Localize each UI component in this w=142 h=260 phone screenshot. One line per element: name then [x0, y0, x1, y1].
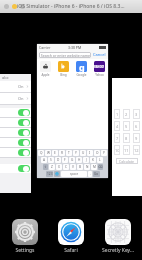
button[interactable]: Key T: [66, 150, 72, 156]
button[interactable]: Carrier: [36, 43, 109, 179]
staticText: C: [65, 165, 68, 169]
button[interactable]: Key O: [94, 150, 100, 156]
staticText: T: [68, 151, 70, 155]
button[interactable]: Toggle on: [0, 118, 31, 127]
button[interactable]: Key Go: [93, 171, 100, 177]
button[interactable]: Window control: [12, 4, 17, 9]
button[interactable]: Key .: [88, 171, 92, 177]
staticText: Safari: [64, 247, 78, 254]
button[interactable]: Toggle on: [18, 165, 30, 172]
staticText: Search or enter website name: [39, 53, 90, 58]
button[interactable]: 10: [114, 145, 120, 155]
staticText: 3:30 PM: [68, 45, 82, 50]
button[interactable]: 8: [123, 133, 130, 143]
button[interactable]: Key V: [70, 164, 76, 170]
button[interactable]: abc: [0, 74, 31, 193]
button[interactable]: Key R: [59, 150, 65, 156]
button[interactable]: Key K: [90, 157, 96, 163]
button[interactable]: Search or enter website name: [39, 52, 91, 58]
button[interactable]: On: [0, 81, 31, 92]
staticText: 9: [135, 136, 138, 141]
staticText: 123: [47, 172, 53, 176]
button[interactable]: Key H: [76, 157, 82, 163]
staticText: F: [64, 158, 66, 162]
button[interactable]: 9: [133, 133, 140, 143]
button[interactable]: Settings: [3, 219, 47, 254]
button[interactable]: Key ⇧: [43, 164, 48, 170]
button[interactable]: Key B: [77, 164, 83, 170]
other: Settings: [12, 219, 38, 245]
button[interactable]: Toggle on: [18, 109, 30, 116]
button[interactable]: Calculate: [116, 158, 138, 164]
button[interactable]: Cancel: [93, 52, 106, 57]
button[interactable]: 6: [133, 121, 140, 131]
staticText: 2: [125, 112, 128, 117]
button[interactable]: YAHOO!: [94, 61, 105, 77]
staticText: 10: [115, 148, 120, 153]
button[interactable]: Key P: [101, 150, 107, 156]
button[interactable]: Key W: [45, 150, 51, 156]
button[interactable]: 4: [114, 121, 120, 131]
button[interactable]: Key L: [97, 157, 103, 163]
button[interactable]: 12: [133, 145, 140, 155]
staticText: Settings: [15, 247, 35, 254]
button[interactable]: Toggle on: [0, 164, 31, 173]
button[interactable]: Key N: [84, 164, 90, 170]
button[interactable]: Toggle on: [0, 138, 31, 147]
button[interactable]: Key J: [83, 157, 89, 163]
button[interactable]: Key Y: [73, 150, 79, 156]
button[interactable]: Toggle on: [0, 108, 31, 117]
button[interactable]: Toggle on: [18, 149, 30, 156]
button[interactable]: 2: [123, 109, 130, 119]
staticText: U: [82, 151, 85, 155]
button[interactable]: Bing: [58, 61, 69, 77]
staticText: B: [79, 165, 82, 169]
button[interactable]: Key F: [62, 157, 68, 163]
button[interactable]: Key D: [55, 157, 61, 163]
button[interactable]: Toggle on: [0, 148, 31, 157]
button[interactable]: Key E: [52, 150, 58, 156]
button[interactable]: Key G: [69, 157, 75, 163]
button[interactable]: 5: [123, 121, 130, 131]
button[interactable]: 1: [114, 109, 120, 119]
button[interactable]: Key ⌫: [98, 164, 103, 170]
button[interactable]: Key A: [41, 157, 47, 163]
button[interactable]: 11: [123, 145, 130, 155]
button[interactable]: Toggle on: [18, 139, 30, 146]
button[interactable]: Key C: [63, 164, 69, 170]
staticText: On: [18, 96, 24, 101]
button[interactable]: On: [0, 93, 31, 104]
button[interactable]: Key I: [87, 150, 93, 156]
button[interactable]: 1: [112, 78, 142, 196]
button[interactable]: Toggle on: [18, 129, 30, 136]
button[interactable]: Key S: [48, 157, 54, 163]
staticText: V: [72, 165, 74, 169]
staticText: D: [57, 158, 60, 162]
button[interactable]: Key 123: [46, 171, 53, 177]
button[interactable]: Key Z: [49, 164, 55, 170]
button[interactable]: Key Q: [38, 150, 44, 156]
staticText: H: [78, 158, 81, 162]
button[interactable]: Key U: [80, 150, 86, 156]
button[interactable]: 3: [133, 109, 140, 119]
button[interactable]: Window control: [20, 4, 25, 9]
staticText: ⌫: [98, 165, 103, 169]
button[interactable]: g: [76, 61, 87, 77]
button[interactable]: Key M: [91, 164, 97, 170]
staticText: abc: [2, 75, 9, 80]
staticText: M: [93, 165, 96, 169]
button[interactable]: Key 🌐: [54, 171, 60, 177]
button[interactable]: Key X: [56, 164, 62, 170]
button[interactable]: Space: [61, 171, 87, 177]
button[interactable]: 7: [114, 133, 120, 143]
staticText: ⇧: [44, 165, 47, 169]
button[interactable]: Apple: [40, 61, 51, 77]
button[interactable]: Safari: [49, 219, 93, 254]
button[interactable]: Toggle on: [18, 119, 30, 126]
staticText: Go: [94, 172, 99, 176]
button[interactable]: Secretly Key: [96, 219, 140, 254]
staticText: J: [86, 158, 87, 162]
button[interactable]: Toggle on: [0, 128, 31, 137]
staticText: 1: [116, 112, 119, 117]
button[interactable]: Window control: [4, 4, 9, 9]
